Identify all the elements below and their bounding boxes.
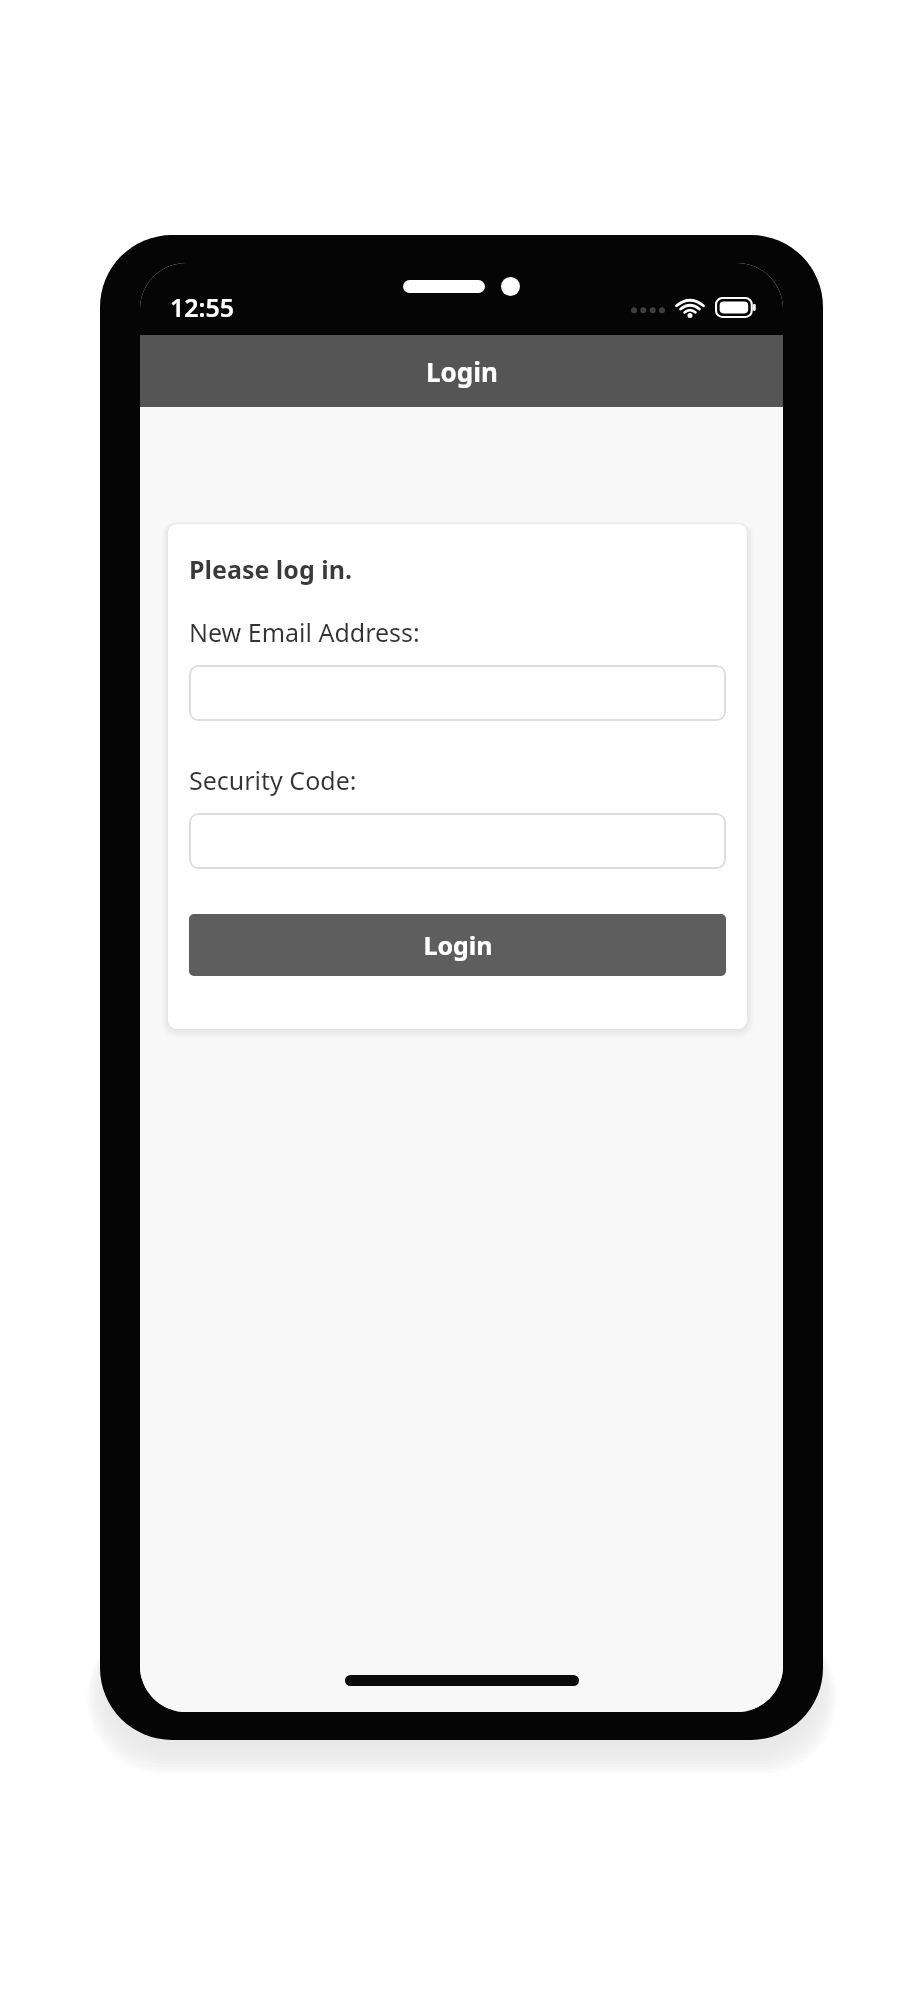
other: Home indicator <box>345 1675 579 1686</box>
button[interactable]: Text input <box>189 665 726 721</box>
staticText: Login <box>423 928 493 962</box>
staticText: Please log in. <box>189 552 352 586</box>
staticText: New Email Address: <box>189 615 420 649</box>
staticText: 12:55 <box>170 290 235 324</box>
button[interactable]: Text input <box>189 813 726 869</box>
staticText: Security Code: <box>189 763 357 797</box>
button[interactable]: Login <box>189 914 726 976</box>
staticText: Login <box>426 354 498 389</box>
